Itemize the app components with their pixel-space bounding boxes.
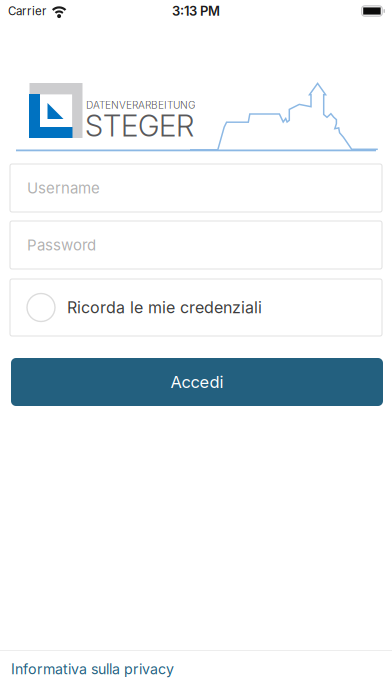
staticText: Username bbox=[27, 179, 100, 197]
staticText: Carrier bbox=[8, 4, 46, 18]
staticText: Ricorda le mie credenziali bbox=[67, 298, 262, 317]
staticText: STEGER bbox=[85, 108, 194, 143]
staticText: Informativa sulla privacy bbox=[11, 660, 174, 678]
staticText: Password bbox=[27, 236, 96, 254]
staticText: 3:13 PM bbox=[172, 3, 220, 19]
staticText: DATENVERARBEITUNG bbox=[86, 99, 196, 111]
button[interactable]: Accedi bbox=[11, 358, 383, 406]
button[interactable]: Informativa sulla privacy bbox=[0, 647, 392, 691]
staticText: Accedi bbox=[170, 372, 223, 392]
button[interactable]: Ricorda le mie credenziali bbox=[10, 279, 382, 336]
